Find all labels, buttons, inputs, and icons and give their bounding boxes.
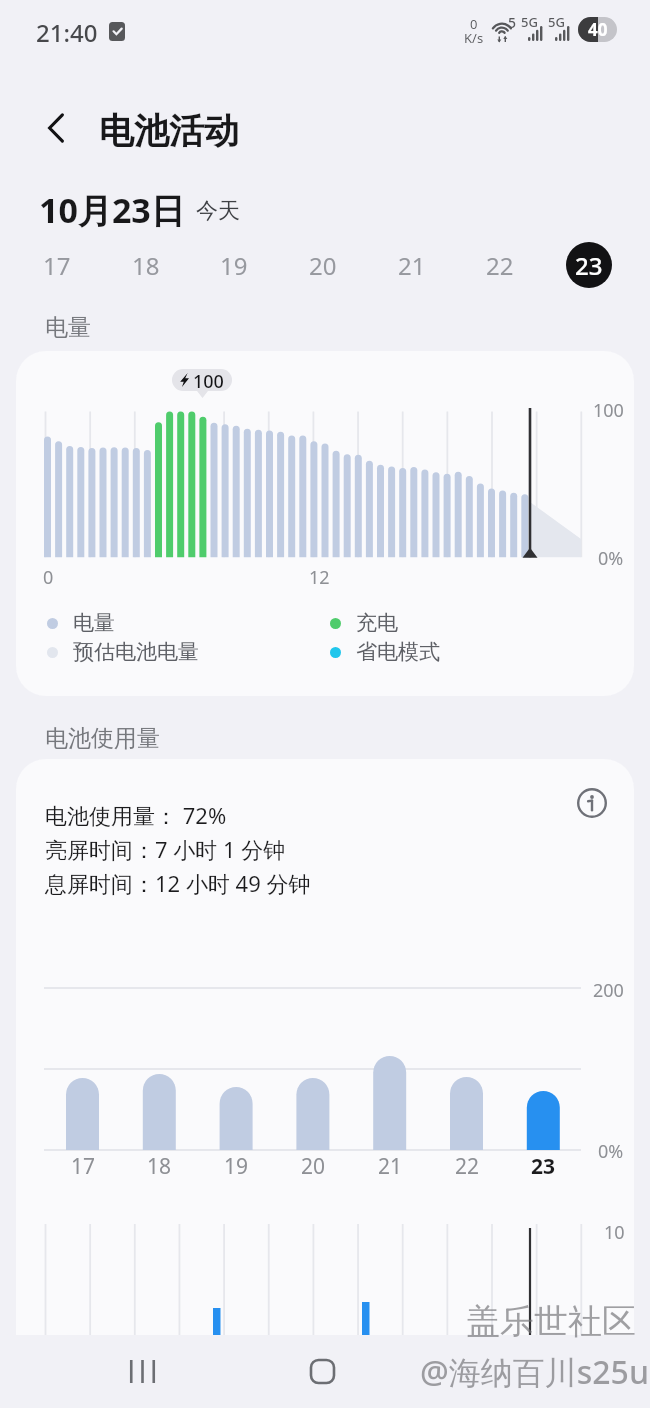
staticText: 21:40 xyxy=(36,16,98,49)
button[interactable]: 18 xyxy=(123,242,169,288)
staticText: 19 xyxy=(224,1152,249,1181)
button[interactable]: 20 xyxy=(300,242,346,288)
staticText: 21 xyxy=(378,1152,403,1181)
staticText: 电池使用量 xyxy=(45,724,160,753)
staticText: 省电模式 xyxy=(356,639,440,665)
staticText: 0% xyxy=(598,1139,624,1164)
staticText: 今天 xyxy=(196,197,240,225)
staticText: 20 xyxy=(309,249,337,282)
staticText: 17 xyxy=(43,249,71,282)
staticText: 100 xyxy=(593,398,624,423)
staticText: 电量 xyxy=(73,610,115,636)
staticText: 21 xyxy=(398,249,426,282)
staticText: 预估电池电量 xyxy=(73,639,199,665)
staticText: 0 xyxy=(43,565,54,590)
staticText: K/s xyxy=(464,29,484,47)
staticText: 18 xyxy=(147,1152,172,1181)
staticText: 19 xyxy=(220,249,248,282)
staticText: 22 xyxy=(455,1152,480,1181)
staticText: 200 xyxy=(593,978,624,1003)
button[interactable]: 21 xyxy=(389,242,435,288)
staticText: 充电 xyxy=(356,610,398,636)
button[interactable]: Back xyxy=(32,104,80,152)
staticText: 23 xyxy=(531,1152,556,1181)
button[interactable]: 19 xyxy=(211,242,257,288)
staticText: 18 xyxy=(132,249,160,282)
button[interactable]: Back xyxy=(466,1335,538,1407)
staticText: 17 xyxy=(71,1152,96,1181)
staticText: 5G xyxy=(548,13,565,31)
staticText: 23 xyxy=(575,249,603,282)
staticText: 电量 xyxy=(45,313,91,342)
button[interactable]: Recents xyxy=(106,1335,178,1407)
button[interactable]: 22 xyxy=(477,242,523,288)
staticText: 100 xyxy=(193,369,224,391)
staticText: 盖乐世社区 xyxy=(466,1300,636,1343)
staticText: 10月23日 xyxy=(39,187,185,233)
staticText: 20 xyxy=(301,1152,326,1181)
staticText: 12 xyxy=(309,565,330,590)
staticText: 10 xyxy=(604,1220,625,1245)
button[interactable]: 17 xyxy=(34,242,80,288)
button[interactable]: 23 xyxy=(566,242,612,288)
staticText: 40 xyxy=(588,18,608,41)
button[interactable]: Home xyxy=(286,1335,358,1407)
staticText: 0% xyxy=(598,546,624,571)
staticText: 亮屏时间：7 小时 1 分钟 xyxy=(45,834,286,864)
staticText: 5 xyxy=(508,13,517,32)
staticText: 0 xyxy=(470,15,478,33)
staticText: 22 xyxy=(486,249,514,282)
staticText: 5G xyxy=(521,13,538,31)
button[interactable]: Info xyxy=(569,780,615,826)
staticText: 电池活动 xyxy=(99,109,239,153)
staticText: 息屏时间：12 小时 49 分钟 xyxy=(45,868,311,898)
staticText: @海纳百川s25u xyxy=(420,1350,649,1394)
staticText: 电池使用量： 72% xyxy=(45,800,227,830)
